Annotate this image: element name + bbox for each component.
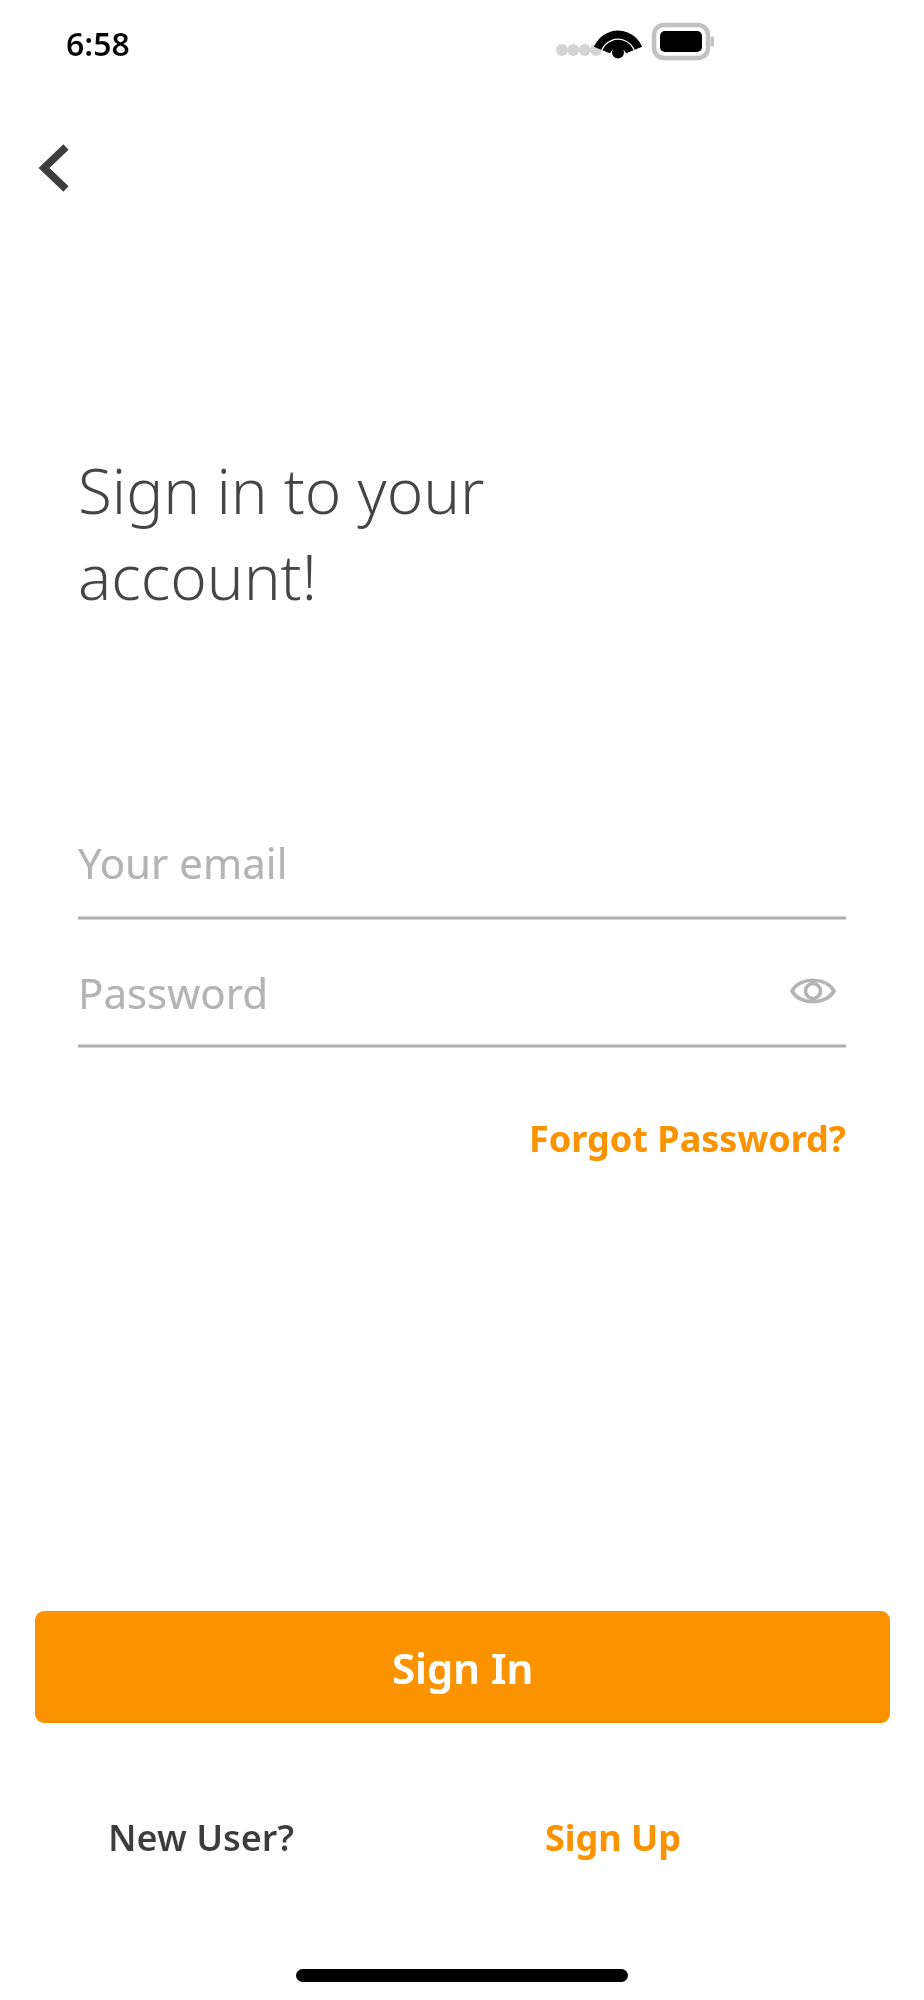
button[interactable]: Sign Up [545,1813,682,1862]
button[interactable]: Password [78,958,846,1048]
staticText: Sign Up [545,1813,682,1862]
button[interactable]: Your email [78,828,846,920]
staticText: Your email [78,834,288,891]
button[interactable]: Sign In [35,1611,890,1723]
staticText: New User? [108,1813,295,1862]
button[interactable]: Back [12,125,98,211]
staticText: 6:58 [66,22,130,66]
staticText: Password [78,964,268,1021]
staticText: Sign in to your account! [78,448,485,619]
button[interactable]: Show password [776,958,850,1024]
button[interactable]: Forgot Password? [529,1114,846,1163]
button[interactable]: New User? [108,1813,295,1862]
staticText: Sign In [392,1639,534,1696]
